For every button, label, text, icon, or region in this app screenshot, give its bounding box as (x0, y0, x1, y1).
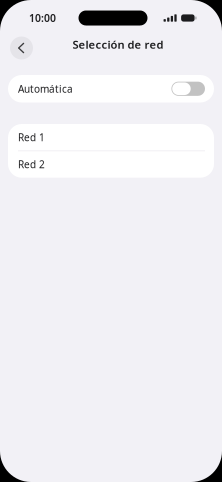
staticText: 10:00 (29, 11, 56, 25)
button[interactable]: Red 2 (8, 151, 214, 178)
button[interactable]: Atrás (10, 36, 33, 59)
button[interactable]: Automática (8, 75, 214, 102)
staticText: Red 1 (18, 130, 45, 144)
staticText: Selección de red (72, 37, 163, 52)
button[interactable]: Red 1 (8, 124, 214, 150)
staticText: Red 2 (18, 158, 45, 171)
staticText: Automática (18, 82, 73, 95)
